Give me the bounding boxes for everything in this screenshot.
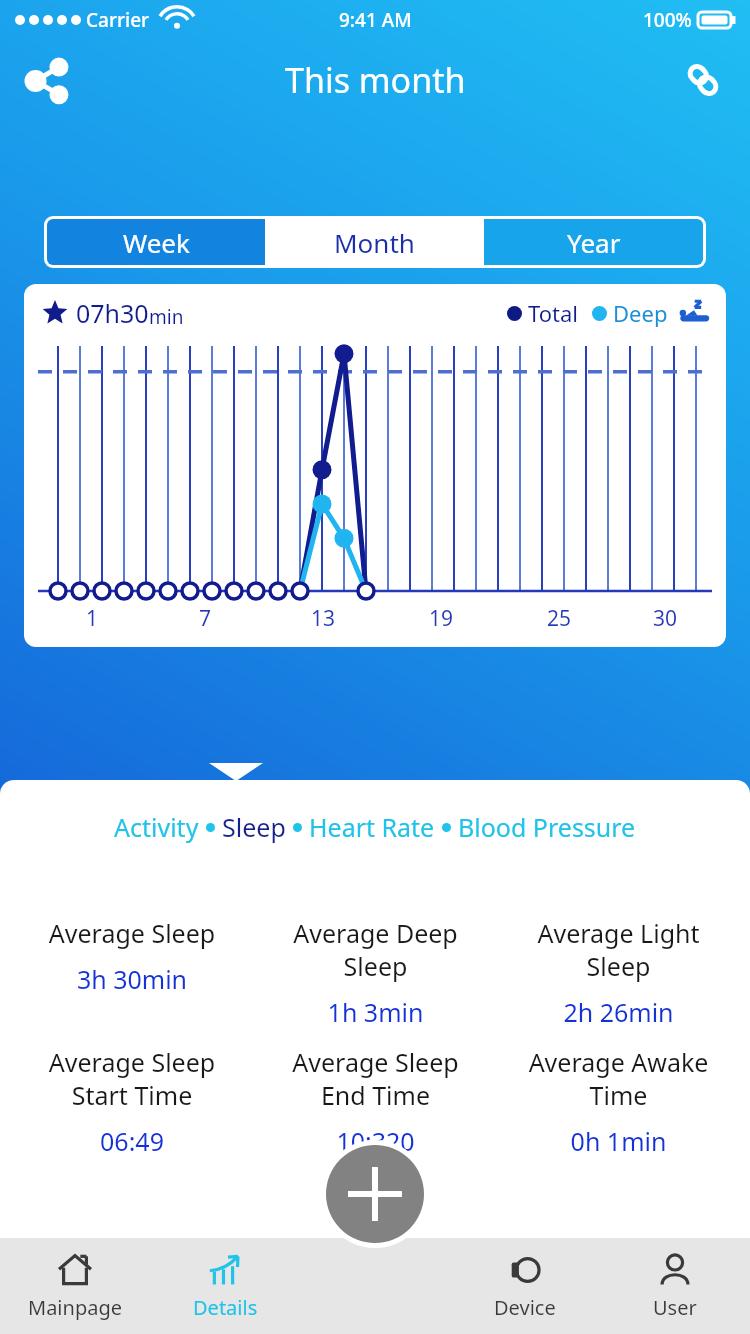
- staticText: 25: [500, 604, 618, 633]
- staticText: 0h 1min: [497, 1124, 740, 1158]
- staticText: Total: [528, 298, 578, 328]
- button[interactable]: Mainpage: [0, 1238, 150, 1334]
- staticText: Month: [334, 225, 415, 260]
- staticText: Sleep: [222, 810, 286, 844]
- staticText: Device: [494, 1294, 556, 1321]
- button[interactable]: Week: [47, 219, 265, 265]
- staticText: Week: [123, 225, 190, 260]
- staticText: 1: [38, 604, 146, 633]
- staticText: 2h 26min: [497, 995, 740, 1029]
- staticText: Carrier: [86, 7, 150, 33]
- staticText: Details: [193, 1294, 258, 1321]
- button[interactable]: Year: [484, 219, 703, 265]
- staticText: 9:41 AM: [339, 7, 412, 33]
- staticText: 19: [382, 604, 500, 633]
- button[interactable]: Heart Rate: [302, 804, 442, 850]
- staticText: Blood Pressure: [458, 810, 636, 844]
- staticText: Average Light Sleep: [497, 916, 740, 983]
- staticText: Average Sleep: [10, 916, 254, 950]
- staticText: 06:49: [10, 1124, 254, 1158]
- staticText: 3h 30min: [10, 962, 254, 996]
- staticText: 100%: [643, 7, 692, 33]
- staticText: min: [149, 304, 184, 330]
- staticText: Mainpage: [28, 1294, 122, 1321]
- staticText: Average Sleep End Time: [254, 1045, 497, 1112]
- staticText: User: [653, 1294, 697, 1321]
- staticText: 13: [264, 604, 382, 633]
- staticText: 1h 3min: [254, 995, 497, 1029]
- button[interactable]: Blood Pressure: [451, 804, 643, 850]
- staticText: Year: [567, 225, 621, 260]
- staticText: 30: [618, 604, 712, 633]
- button[interactable]: Add: [321, 1140, 429, 1248]
- staticText: Average Sleep Start Time: [10, 1045, 254, 1112]
- button[interactable]: Sleep: [215, 804, 293, 850]
- button[interactable]: Month: [265, 219, 484, 265]
- button[interactable]: Device: [450, 1238, 600, 1334]
- staticText: This month: [285, 57, 466, 103]
- button[interactable]: Link: [672, 49, 734, 111]
- staticText: Average Deep Sleep: [254, 916, 497, 983]
- staticText: 7: [146, 604, 264, 633]
- button[interactable]: Details: [150, 1238, 300, 1334]
- staticText: Average Awake Time: [497, 1045, 740, 1112]
- button[interactable]: User: [600, 1238, 750, 1334]
- staticText: Heart Rate: [309, 810, 435, 844]
- button[interactable]: Share: [16, 49, 78, 111]
- staticText: 07h30: [76, 296, 149, 330]
- staticText: Deep: [613, 298, 668, 328]
- staticText: 10:320: [254, 1124, 497, 1158]
- staticText: Activity: [114, 810, 199, 844]
- button[interactable]: Activity: [107, 804, 206, 850]
